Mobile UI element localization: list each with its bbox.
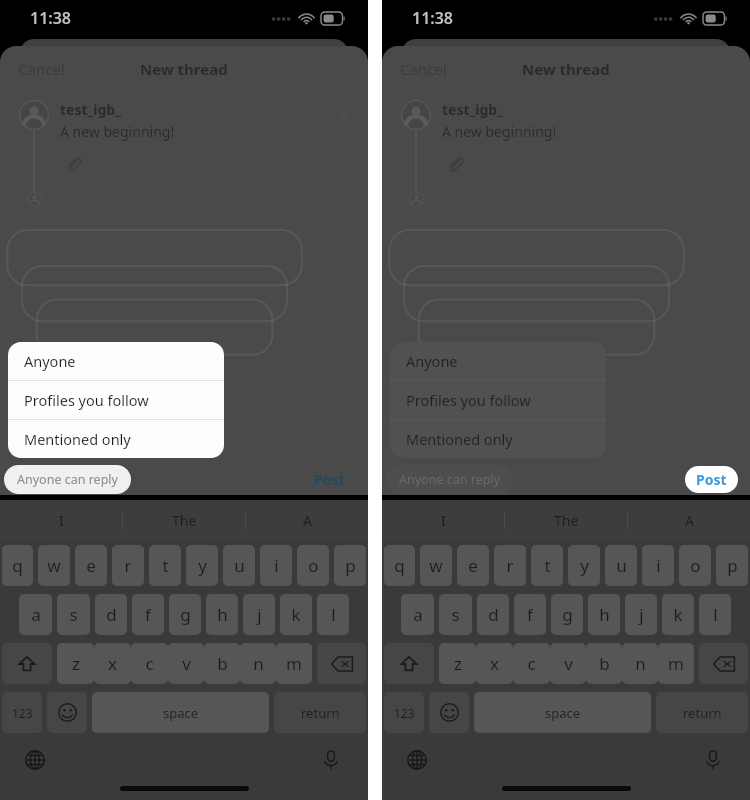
button[interactable]: a xyxy=(401,594,434,635)
button[interactable]: Anyone can reply xyxy=(4,465,131,494)
staticText: j xyxy=(639,603,644,626)
button[interactable]: i xyxy=(260,545,292,586)
button[interactable]: l xyxy=(699,594,731,635)
button[interactable]: Attach media xyxy=(442,151,468,177)
button[interactable]: t xyxy=(149,545,181,586)
button[interactable]: d xyxy=(477,594,509,635)
button[interactable]: Backspace xyxy=(317,643,366,684)
button[interactable]: d xyxy=(95,594,127,635)
button[interactable]: 123 xyxy=(2,692,42,733)
button[interactable]: Anyone xyxy=(390,342,606,380)
staticText: k xyxy=(291,603,301,626)
button[interactable]: Shift xyxy=(384,643,434,684)
button[interactable]: Post xyxy=(685,466,738,493)
button[interactable]: Dictate xyxy=(316,745,346,775)
button[interactable]: g xyxy=(551,594,583,635)
button[interactable]: l xyxy=(317,594,349,635)
button[interactable]: v xyxy=(550,643,586,684)
button[interactable]: h xyxy=(588,594,620,635)
button[interactable]: Cancel xyxy=(382,51,465,87)
button[interactable]: g xyxy=(169,594,201,635)
button[interactable]: r xyxy=(494,545,526,586)
staticText: The xyxy=(554,511,579,530)
button[interactable]: Mentioned only xyxy=(8,420,224,458)
button[interactable]: e xyxy=(457,545,489,586)
button[interactable]: b xyxy=(204,643,240,684)
button[interactable]: Dictate xyxy=(698,745,728,775)
button[interactable]: n xyxy=(240,643,276,684)
button[interactable]: The xyxy=(505,500,627,540)
button[interactable]: o xyxy=(679,545,711,586)
button[interactable]: r xyxy=(112,545,144,586)
button[interactable]: Shift xyxy=(2,643,52,684)
button[interactable]: p xyxy=(716,545,748,586)
staticText: b xyxy=(217,652,228,675)
button[interactable]: b xyxy=(586,643,622,684)
button[interactable]: y xyxy=(568,545,600,586)
button[interactable]: c xyxy=(513,643,550,684)
button[interactable]: j xyxy=(243,594,275,635)
button[interactable]: a xyxy=(19,594,52,635)
button[interactable]: Switch keyboard xyxy=(402,745,432,775)
button[interactable]: u xyxy=(223,545,255,586)
button[interactable]: k xyxy=(280,594,312,635)
button[interactable]: The xyxy=(123,500,245,540)
button[interactable]: 123 xyxy=(384,692,424,733)
button[interactable]: y xyxy=(186,545,218,586)
button[interactable]: q xyxy=(384,545,415,586)
button[interactable]: q xyxy=(2,545,33,586)
button[interactable]: c xyxy=(131,643,168,684)
button[interactable]: m xyxy=(658,643,694,684)
button[interactable]: z xyxy=(57,643,94,684)
button[interactable]: k xyxy=(662,594,694,635)
button[interactable]: space xyxy=(92,692,269,733)
button[interactable]: return xyxy=(274,692,366,733)
button[interactable]: x xyxy=(94,643,131,684)
button[interactable]: Switch keyboard xyxy=(20,745,50,775)
button[interactable]: Emoji xyxy=(429,692,469,733)
staticText: z xyxy=(454,652,462,675)
button[interactable]: j xyxy=(625,594,657,635)
button[interactable]: f xyxy=(514,594,546,635)
button[interactable]: e xyxy=(75,545,107,586)
button[interactable]: Anyone can reply xyxy=(386,465,513,494)
button[interactable]: space xyxy=(474,692,651,733)
button[interactable]: w xyxy=(38,545,70,586)
button[interactable]: m xyxy=(276,643,312,684)
button[interactable]: p xyxy=(334,545,366,586)
button[interactable]: Attach media xyxy=(60,151,86,177)
button[interactable]: f xyxy=(132,594,164,635)
button[interactable]: return xyxy=(656,692,748,733)
button[interactable]: h xyxy=(206,594,238,635)
button[interactable]: Post xyxy=(303,466,356,493)
button[interactable]: t xyxy=(531,545,563,586)
staticText: Anyone can reply xyxy=(399,471,500,488)
staticText: q xyxy=(12,554,23,577)
staticText: 11:38 xyxy=(412,7,454,29)
button[interactable]: u xyxy=(605,545,637,586)
button[interactable]: i xyxy=(642,545,674,586)
button[interactable]: o xyxy=(297,545,329,586)
button[interactable]: x xyxy=(476,643,513,684)
button[interactable]: n xyxy=(622,643,658,684)
button[interactable]: v xyxy=(168,643,204,684)
button[interactable]: Profiles you follow xyxy=(390,381,606,419)
button[interactable]: s xyxy=(439,594,472,635)
button[interactable]: Cancel xyxy=(0,51,83,87)
button[interactable]: Anyone xyxy=(8,342,224,380)
button[interactable]: Emoji xyxy=(47,692,87,733)
staticText: r xyxy=(124,554,132,577)
button[interactable]: z xyxy=(439,643,476,684)
staticText: 123 xyxy=(394,705,415,721)
button[interactable]: s xyxy=(57,594,90,635)
button[interactable]: Backspace xyxy=(699,643,748,684)
button[interactable]: Mentioned only xyxy=(390,420,606,458)
button[interactable]: Profiles you follow xyxy=(8,381,224,419)
button[interactable]: w xyxy=(420,545,452,586)
